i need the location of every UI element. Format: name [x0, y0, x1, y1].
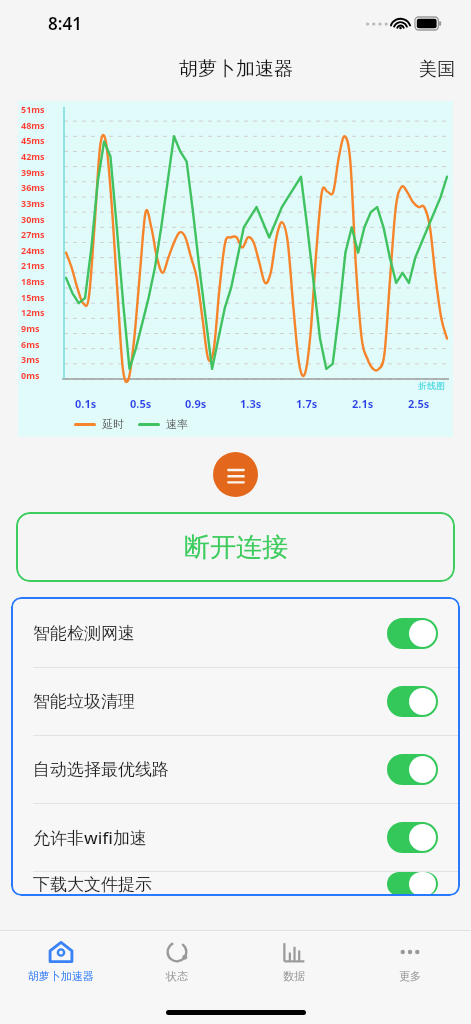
staticText: 27ms — [21, 228, 45, 240]
staticText: 42ms — [21, 150, 45, 162]
staticText: 数据 — [283, 969, 305, 983]
button[interactable]: 下载大文件提示 — [11, 872, 460, 896]
button[interactable]: Menu — [213, 452, 258, 497]
staticText: 6ms — [21, 338, 40, 350]
staticText: 51ms — [21, 103, 45, 115]
staticText: 18ms — [21, 275, 45, 287]
staticText: 智能检测网速 — [33, 623, 135, 644]
staticText: 15ms — [21, 291, 45, 303]
staticText: 30ms — [21, 213, 45, 225]
staticText: 状态 — [166, 969, 188, 983]
staticText: 24ms — [21, 244, 45, 256]
staticText: 9ms — [21, 322, 40, 334]
staticText: 折线图 — [418, 380, 445, 391]
staticText: 48ms — [21, 119, 45, 131]
staticText: 允许非wifi加速 — [33, 826, 147, 849]
staticText: 36ms — [21, 181, 45, 193]
button[interactable] — [387, 822, 438, 853]
staticText: 45ms — [21, 134, 45, 146]
staticText: 智能垃圾清理 — [33, 691, 135, 712]
button[interactable] — [387, 686, 438, 717]
button[interactable]: 智能垃圾清理 — [11, 668, 460, 735]
staticText: 21ms — [21, 259, 45, 271]
button[interactable]: 自动选择最优线路 — [11, 736, 460, 803]
staticText: 0.5s — [130, 396, 152, 411]
button[interactable]: 胡萝卜加速器 — [6, 930, 116, 992]
staticText: 更多 — [399, 969, 421, 983]
staticText: 胡萝卜加速器 — [179, 57, 293, 81]
staticText: 0.9s — [185, 396, 207, 411]
button[interactable]: 美国 — [419, 58, 455, 81]
staticText: 8:41 — [48, 12, 82, 35]
button[interactable]: 状态 — [122, 930, 232, 992]
staticText: 自动选择最优线路 — [33, 759, 169, 780]
button[interactable]: 智能检测网速 — [11, 600, 460, 667]
staticText: 延时 — [102, 417, 124, 431]
staticText: 3ms — [21, 353, 40, 365]
staticText: 1.3s — [240, 396, 262, 411]
staticText: 33ms — [21, 197, 45, 209]
staticText: 2.1s — [352, 396, 374, 411]
button[interactable] — [387, 754, 438, 785]
staticText: 12ms — [21, 306, 45, 318]
staticText: 0.1s — [75, 396, 97, 411]
staticText: 断开连接 — [184, 531, 288, 564]
button[interactable]: 更多 — [355, 930, 465, 992]
staticText: 胡萝卜加速器 — [28, 969, 94, 983]
staticText: 39ms — [21, 166, 45, 178]
staticText: 0ms — [21, 369, 40, 381]
button[interactable]: 允许非wifi加速 — [11, 804, 460, 871]
staticText: 1.7s — [296, 396, 318, 411]
staticText: 2.5s — [408, 396, 430, 411]
button[interactable]: 断开连接 — [16, 512, 455, 582]
button[interactable] — [387, 872, 438, 896]
staticText: 下载大文件提示 — [33, 874, 152, 895]
button[interactable] — [387, 618, 438, 649]
staticText: 速率 — [166, 417, 188, 431]
button[interactable]: 数据 — [239, 930, 349, 992]
